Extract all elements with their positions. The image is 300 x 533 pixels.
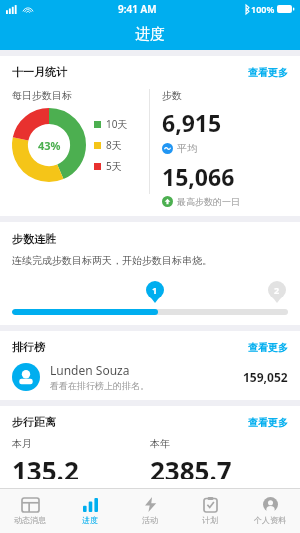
staticText: 2 bbox=[274, 284, 280, 296]
staticText: 本年 bbox=[150, 437, 170, 450]
button[interactable]: 查看更多 bbox=[248, 416, 288, 429]
staticText: 进度 bbox=[135, 25, 165, 44]
staticText: 连续完成步数目标两天，开始步数目标串烧。 bbox=[12, 254, 212, 267]
button[interactable]: 进度 bbox=[60, 489, 120, 533]
staticText: 43% bbox=[38, 138, 61, 153]
staticText: 个人资料 bbox=[254, 515, 286, 525]
staticText: 活动 bbox=[142, 515, 158, 525]
staticText: 10天 bbox=[106, 117, 128, 131]
button[interactable]: 活动 bbox=[120, 489, 180, 533]
staticText: 查看更多 bbox=[248, 416, 288, 429]
staticText: 1 bbox=[152, 284, 158, 296]
staticText: 动态消息 bbox=[14, 515, 46, 525]
button[interactable]: 查看更多 bbox=[248, 341, 288, 354]
button[interactable]: 计划 bbox=[180, 489, 240, 533]
staticText: 8天 bbox=[106, 138, 122, 152]
staticText: 最高步数的一日 bbox=[177, 196, 240, 207]
button[interactable]: 动态消息 bbox=[0, 489, 60, 533]
staticText: 计划 bbox=[202, 515, 218, 525]
staticText: 6,915 bbox=[162, 107, 222, 138]
button[interactable]: 查看更多 bbox=[248, 66, 288, 79]
staticText: 十一月统计 bbox=[12, 65, 67, 79]
button[interactable]: 个人资料 bbox=[240, 489, 300, 533]
button[interactable]: Lunden Souza bbox=[12, 362, 288, 391]
staticText: 本月 bbox=[12, 437, 32, 450]
staticText: 5天 bbox=[106, 159, 122, 173]
staticText: 15,066 bbox=[162, 161, 235, 192]
staticText: 进度 bbox=[82, 515, 98, 525]
staticText: 9:41 AM bbox=[118, 2, 157, 16]
staticText: 135.2 bbox=[12, 453, 79, 479]
staticText: 步数连胜 bbox=[12, 232, 56, 246]
staticText: Lunden Souza bbox=[50, 362, 130, 378]
staticText: 159,052 bbox=[243, 369, 288, 385]
staticText: 查看更多 bbox=[248, 66, 288, 79]
staticText: 平均 bbox=[177, 142, 197, 155]
staticText: 步行距离 bbox=[12, 415, 56, 429]
staticText: 查看更多 bbox=[248, 341, 288, 354]
staticText: 步数 bbox=[162, 89, 182, 102]
staticText: 每日步数目标 bbox=[12, 89, 72, 102]
staticText: 100% bbox=[251, 3, 275, 15]
staticText: 2385.7 bbox=[150, 453, 232, 479]
staticText: 排行榜 bbox=[12, 340, 45, 354]
staticText: 看看在排行榜上的排名。 bbox=[50, 380, 149, 391]
